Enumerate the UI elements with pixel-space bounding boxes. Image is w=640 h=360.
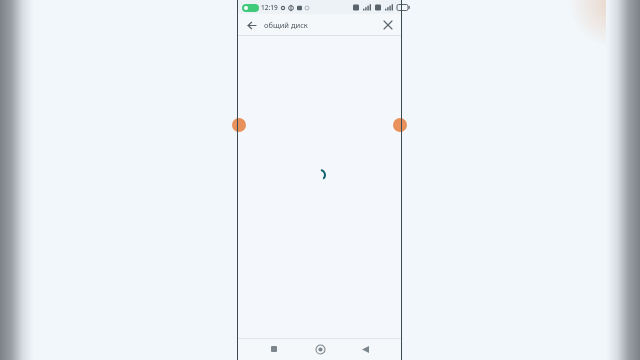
button[interactable]: Back xyxy=(243,17,259,33)
button[interactable]: Back xyxy=(356,340,374,358)
staticText: общий диск xyxy=(264,20,308,30)
button[interactable]: Home xyxy=(311,340,329,358)
button[interactable]: Close xyxy=(380,17,396,33)
staticText: 12:19 xyxy=(261,3,278,12)
button[interactable]: Recent apps xyxy=(265,340,283,358)
